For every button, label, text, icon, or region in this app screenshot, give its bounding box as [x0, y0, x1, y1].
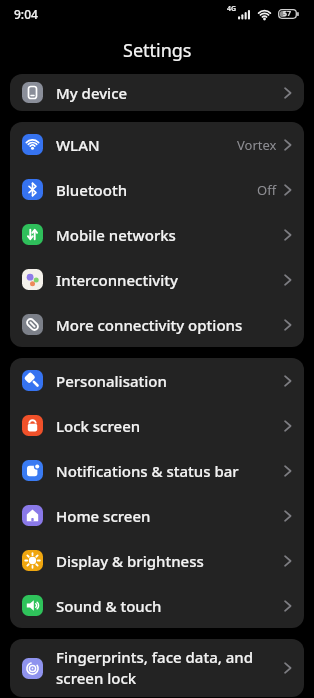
- button[interactable]: Sound & touch: [10, 583, 304, 628]
- staticText: Fingerprints, face data, and screen lock: [56, 647, 254, 689]
- button[interactable]: More connectivity options: [10, 302, 304, 347]
- button[interactable]: Mobile networks: [10, 212, 304, 257]
- staticText: My device: [56, 83, 128, 103]
- staticText: Notifications & status bar: [56, 461, 239, 481]
- staticText: Vortex: [237, 136, 277, 154]
- staticText: Settings: [123, 38, 192, 63]
- button[interactable]: Home screen: [10, 493, 304, 538]
- button[interactable]: Fingerprints, face data, and screen lock: [10, 639, 304, 697]
- staticText: 57: [283, 9, 292, 19]
- button[interactable]: WLAN: [10, 122, 304, 167]
- button[interactable]: Lock screen: [10, 403, 304, 448]
- button[interactable]: My device: [10, 74, 304, 111]
- staticText: Sound & touch: [56, 596, 162, 616]
- staticText: Personalisation: [56, 371, 167, 391]
- staticText: More connectivity options: [56, 315, 243, 335]
- button[interactable]: Notifications & status bar: [10, 448, 304, 493]
- staticText: Home screen: [56, 506, 151, 526]
- staticText: Lock screen: [56, 416, 141, 436]
- staticText: Mobile networks: [56, 225, 176, 245]
- button[interactable]: Interconnectivity: [10, 257, 304, 302]
- staticText: Display & brightness: [56, 551, 204, 571]
- staticText: WLAN: [56, 135, 100, 155]
- button[interactable]: Bluetooth: [10, 167, 304, 212]
- staticText: Interconnectivity: [56, 270, 178, 290]
- button[interactable]: Personalisation: [10, 358, 304, 403]
- staticText: Bluetooth: [56, 180, 128, 200]
- button[interactable]: Display & brightness: [10, 538, 304, 583]
- staticText: 4G: [227, 4, 237, 14]
- staticText: 9:04: [14, 6, 38, 22]
- staticText: Off: [257, 181, 277, 199]
